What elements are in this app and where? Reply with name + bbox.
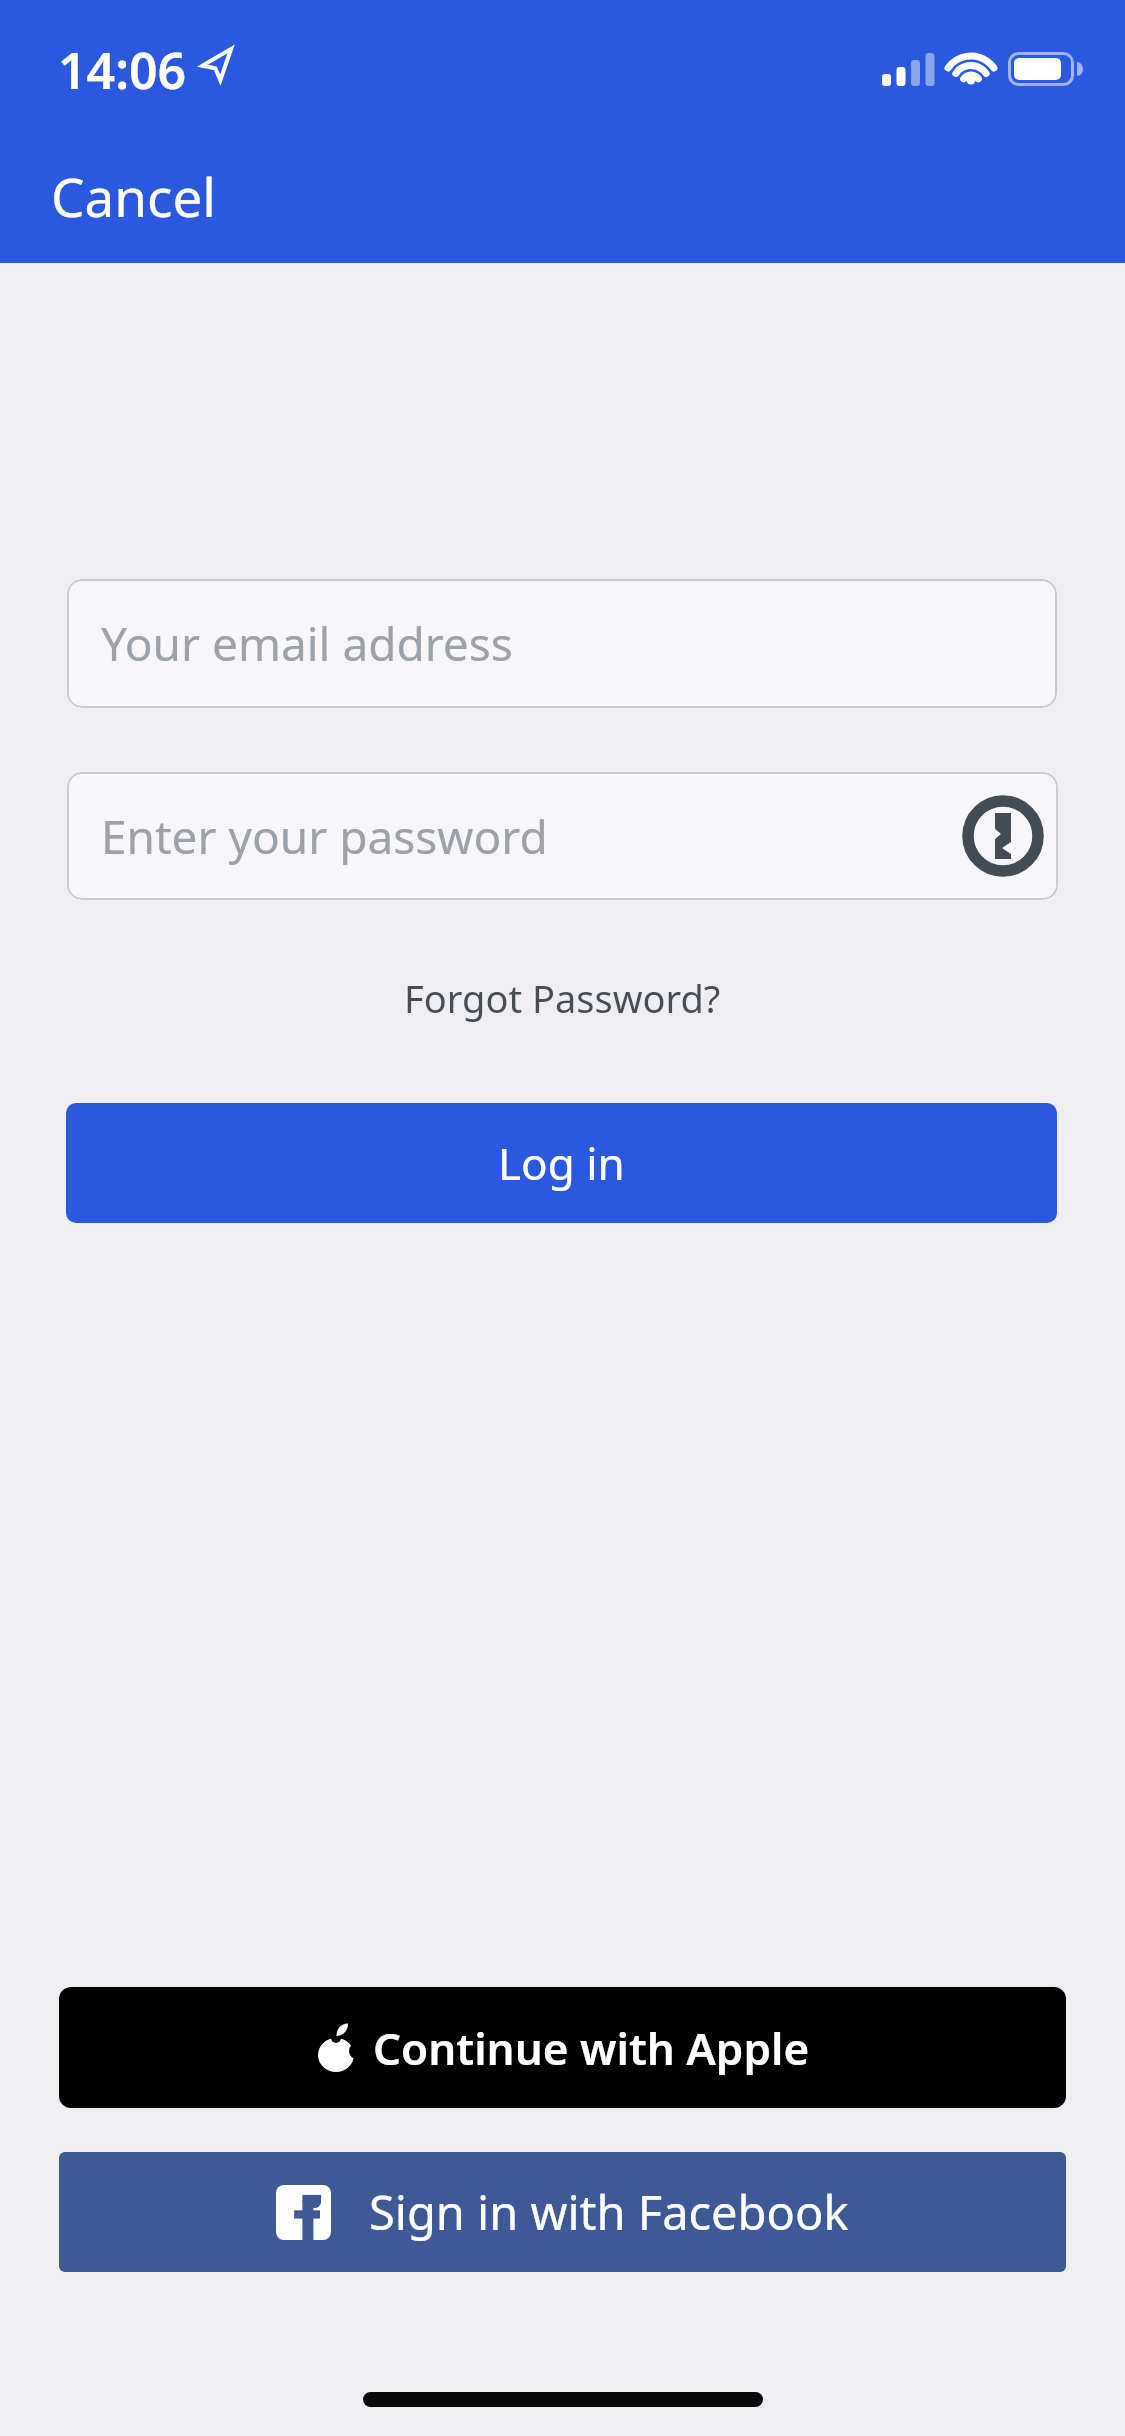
button[interactable]: Continue with Apple — [59, 1987, 1066, 2108]
button[interactable]: Forgot Password? — [384, 960, 741, 1036]
staticText: Continue with Apple — [373, 2018, 810, 2078]
staticText: Sign in with Facebook — [369, 2180, 849, 2244]
staticText: Enter your password — [101, 805, 548, 868]
staticText: Log in — [498, 1133, 625, 1193]
staticText: Forgot Password? — [404, 972, 721, 1024]
button[interactable]: Sign in with Facebook — [59, 2152, 1066, 2272]
button[interactable]: Your email address — [67, 579, 1057, 708]
button[interactable]: Log in — [66, 1103, 1057, 1223]
staticText: Your email address — [101, 612, 513, 675]
button[interactable]: Enter your password — [67, 772, 1058, 900]
button[interactable]: Cancel — [30, 150, 237, 242]
staticText: 14:06 — [58, 36, 187, 104]
staticText: Cancel — [51, 160, 216, 232]
